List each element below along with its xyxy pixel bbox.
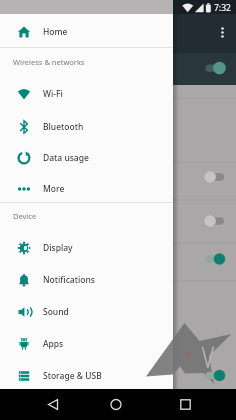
button[interactable] xyxy=(37,389,69,420)
staticText: Sound xyxy=(43,306,69,318)
button[interactable]: Bluetooth xyxy=(0,111,173,143)
staticText: Apps xyxy=(43,338,64,350)
staticText: Bluetooth xyxy=(43,121,84,133)
staticText: Data usage xyxy=(43,152,89,164)
staticText: Home xyxy=(43,26,68,38)
button[interactable]: Storage & USB xyxy=(0,360,173,392)
staticText: Display xyxy=(43,242,73,254)
button[interactable]: Apps xyxy=(0,328,173,360)
staticText: Device xyxy=(13,211,37,221)
staticText: More xyxy=(43,183,65,195)
staticText: Storage & USB xyxy=(43,370,102,382)
staticText: Notifications xyxy=(43,274,95,286)
button[interactable]: Notifications xyxy=(0,264,173,296)
button[interactable]: Wi-Fi xyxy=(0,78,173,110)
button[interactable]: More xyxy=(0,173,173,205)
button[interactable] xyxy=(100,389,132,420)
button[interactable]: Home xyxy=(0,16,173,48)
button[interactable]: Display xyxy=(0,232,173,264)
staticText: 7:32 xyxy=(214,2,231,14)
staticText: Wireless & networks xyxy=(13,57,85,67)
staticText: Wi-Fi xyxy=(43,88,63,100)
button[interactable]: Data usage xyxy=(0,142,173,174)
button[interactable]: Sound xyxy=(0,296,173,328)
button[interactable] xyxy=(169,389,201,420)
